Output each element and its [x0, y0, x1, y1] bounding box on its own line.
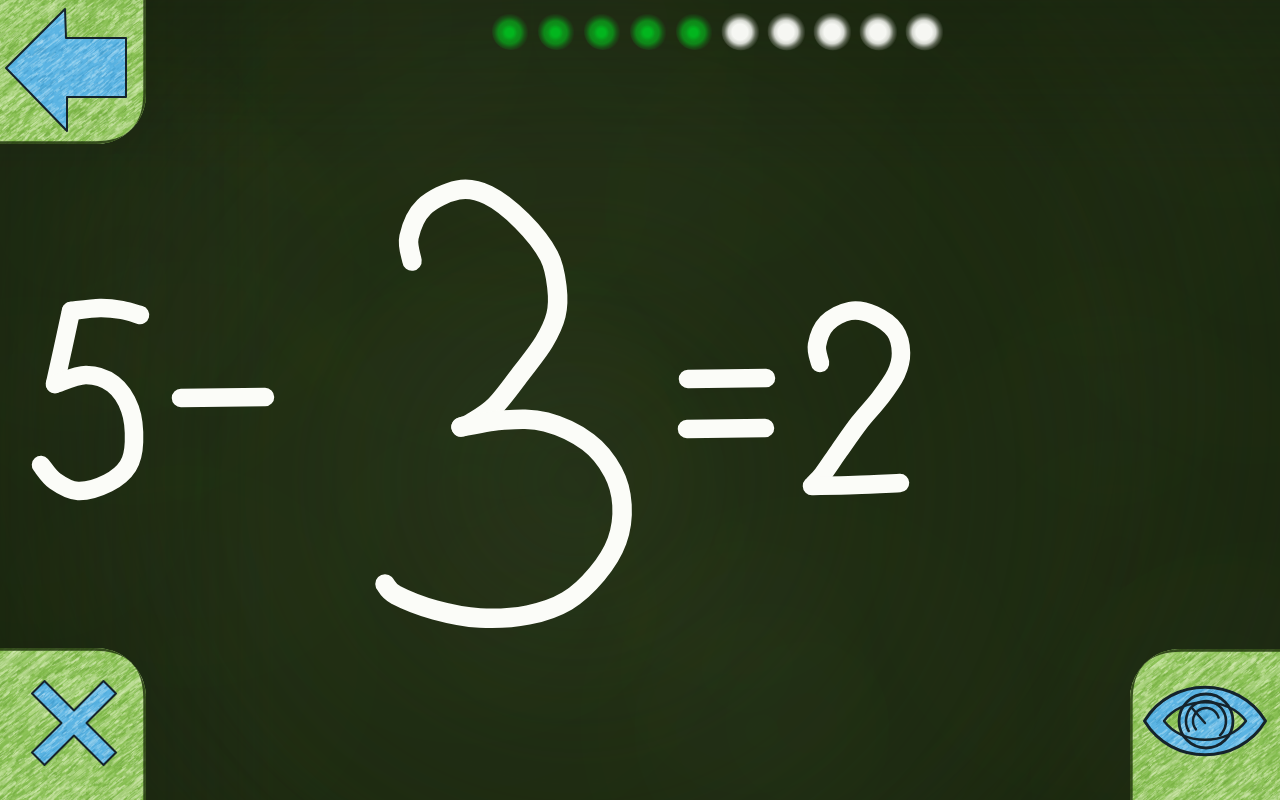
button[interactable]: Clear — [0, 648, 146, 800]
button[interactable]: Show answer — [1130, 649, 1280, 800]
button[interactable]: Back — [0, 0, 146, 144]
